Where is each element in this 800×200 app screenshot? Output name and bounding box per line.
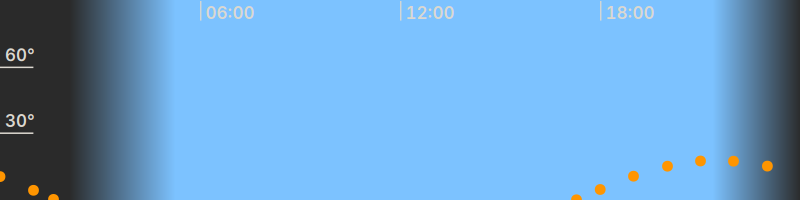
staticText: 06:00	[205, 3, 254, 23]
staticText: 30°	[5, 111, 35, 131]
staticText: 60°	[5, 45, 35, 65]
staticText: 18:00	[605, 3, 654, 23]
staticText: 12:00	[405, 3, 454, 23]
